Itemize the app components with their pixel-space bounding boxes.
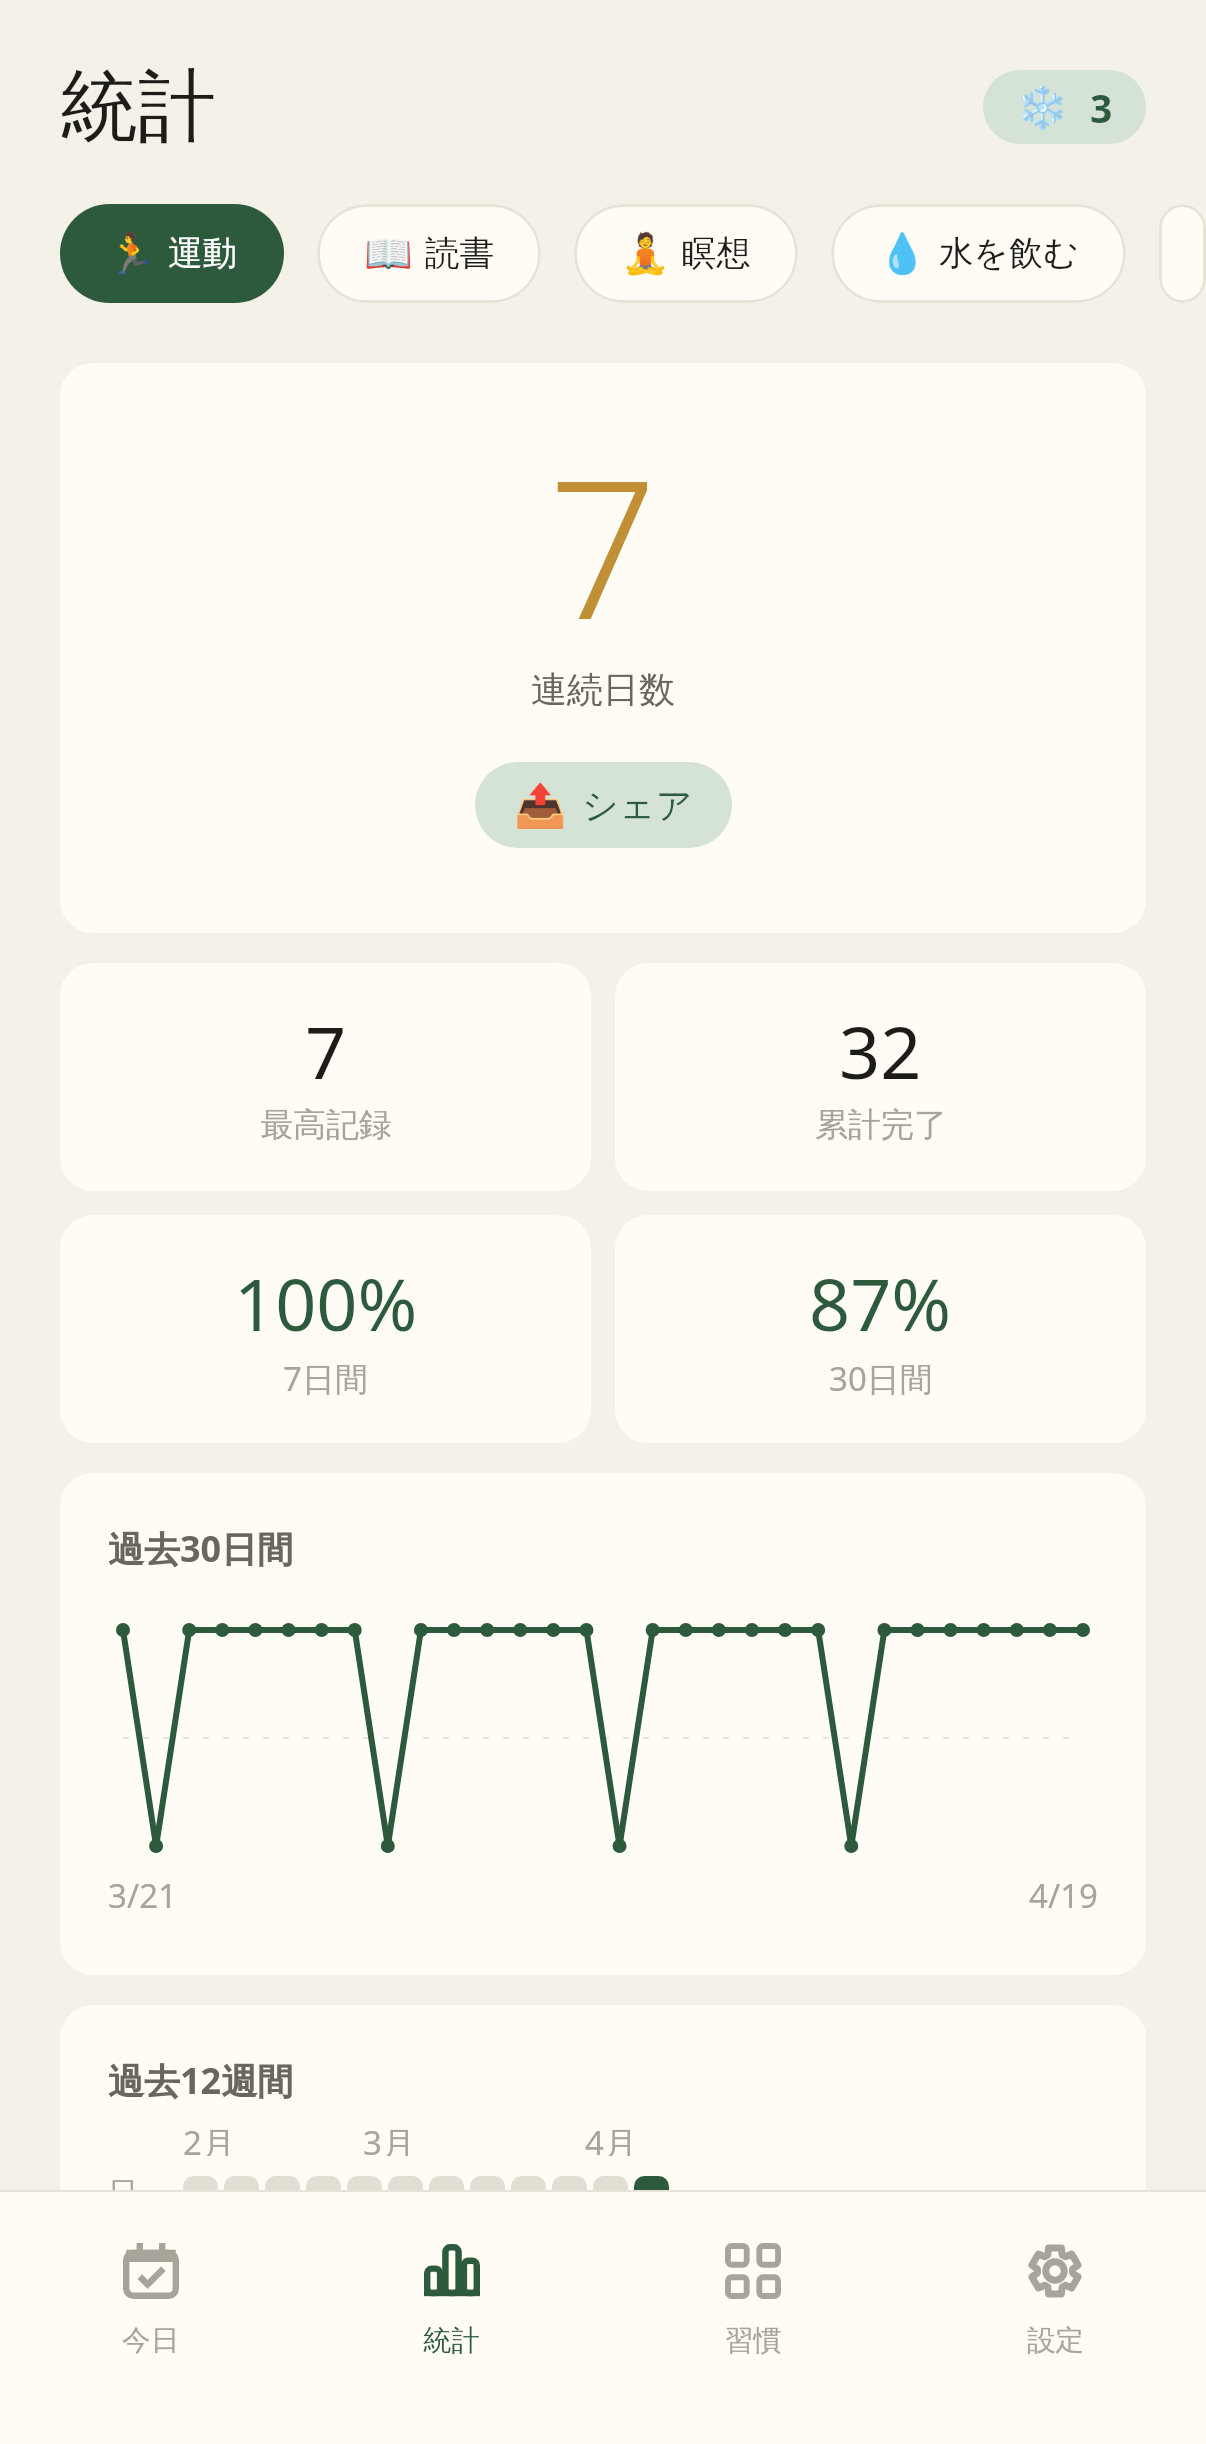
button[interactable]: 🏃 (60, 204, 284, 303)
staticText: 7 (548, 414, 658, 676)
staticText: 87% (809, 1254, 952, 1352)
staticText: 読書 (425, 232, 494, 275)
button[interactable]: Freeze tokens (983, 70, 1146, 144)
staticText: 📤 (514, 781, 567, 830)
staticText: 3/21 (108, 1873, 177, 1918)
staticText: 今日 (122, 2323, 179, 2359)
staticText: 🧘 (621, 231, 670, 277)
button[interactable]: Stats (301, 2192, 602, 2444)
button[interactable]: 🧘 (574, 204, 798, 303)
staticText: 統計 (423, 2323, 480, 2359)
staticText: 🏃 (107, 231, 156, 277)
staticText: 4月 (585, 2120, 637, 2156)
staticText: 火 (108, 2262, 138, 2300)
staticText: 月 (108, 2218, 138, 2256)
button[interactable]: 💧 (831, 204, 1126, 303)
staticText: 統計 (60, 58, 216, 156)
staticText: 設定 (1027, 2323, 1084, 2359)
staticText: ❄️ (1016, 83, 1069, 132)
staticText: 累計完了 (815, 1104, 947, 1146)
staticText: 3月 (363, 2120, 415, 2156)
staticText: 日 (108, 2174, 138, 2212)
staticText: 30日間 (829, 1356, 933, 1401)
staticText: 運動 (168, 232, 237, 275)
staticText: 習慣 (725, 2323, 782, 2359)
staticText: 3 (1090, 81, 1113, 134)
button[interactable]: Today (0, 2192, 301, 2444)
staticText: シェア (582, 783, 693, 828)
staticText: 水 (108, 2306, 138, 2344)
staticText: 連続日数 (531, 667, 675, 712)
staticText: 100% (234, 1254, 418, 1352)
other: Today (123, 2243, 179, 2299)
staticText: 最高記録 (260, 1104, 392, 1146)
other: Stats (424, 2243, 480, 2299)
button[interactable]: Habits (602, 2192, 904, 2444)
staticText: 7 (305, 1002, 347, 1100)
button[interactable]: 📖 (317, 204, 541, 303)
staticText: 4/19 (1029, 1873, 1098, 1918)
staticText: 📖 (364, 231, 413, 277)
staticText: 過去30日間 (108, 1524, 294, 1573)
button[interactable]: Settings (904, 2192, 1206, 2444)
staticText: 💧 (878, 231, 927, 277)
other: Settings (1027, 2243, 1083, 2299)
button[interactable]: 🍎 (1159, 204, 1206, 303)
staticText: 水を飲む (939, 232, 1079, 275)
staticText: 過去12週間 (108, 2056, 294, 2105)
staticText: 2月 (183, 2120, 235, 2156)
other: Habits (725, 2243, 781, 2299)
staticText: 7日間 (283, 1356, 368, 1401)
button[interactable]: シェア (475, 762, 732, 848)
staticText: 32 (839, 1002, 922, 1100)
staticText: 瞑想 (682, 232, 751, 275)
